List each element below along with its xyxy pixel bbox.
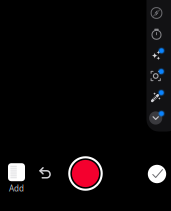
button[interactable]: Done xyxy=(146,163,167,184)
button[interactable]: Undo xyxy=(34,163,56,185)
staticText: Add xyxy=(9,183,24,194)
button[interactable]: Record xyxy=(67,155,103,191)
button[interactable]: Filters xyxy=(146,44,167,65)
button[interactable]: Scan mode xyxy=(146,65,167,86)
button[interactable]: Flash off xyxy=(146,2,167,23)
button[interactable]: Hide controls xyxy=(146,107,167,128)
button[interactable]: Add xyxy=(0,163,33,193)
button[interactable]: Timer xyxy=(146,23,167,44)
button[interactable]: Auto enhance xyxy=(146,86,167,107)
